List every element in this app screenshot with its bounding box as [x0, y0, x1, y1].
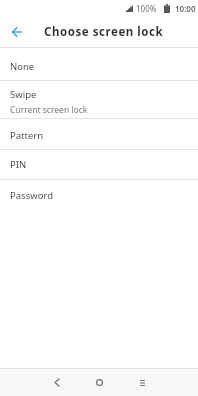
staticText: Password — [10, 189, 53, 202]
staticText: None — [10, 60, 35, 73]
button[interactable]: Password — [0, 180, 198, 210]
button[interactable] — [121, 369, 164, 396]
staticText: Choose screen lock — [44, 24, 164, 40]
button[interactable]: None — [0, 48, 198, 80]
button[interactable]: Swipe — [0, 81, 198, 118]
staticText: Current screen lock — [10, 104, 88, 116]
button[interactable] — [0, 16, 34, 47]
button[interactable] — [78, 369, 121, 396]
staticText: Swipe — [10, 88, 37, 101]
staticText: Pattern — [10, 129, 44, 142]
staticText: 10:00 — [175, 3, 196, 14]
button[interactable]: Pattern — [0, 119, 198, 149]
button[interactable]: PIN — [0, 150, 198, 179]
staticText: PIN — [10, 158, 27, 171]
staticText: 100% — [136, 3, 157, 14]
button[interactable] — [35, 369, 78, 396]
